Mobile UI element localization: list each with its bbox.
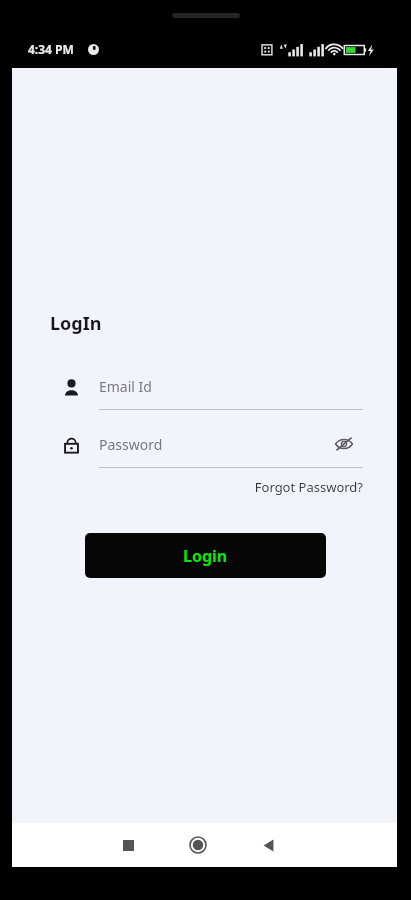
staticText: LogIn bbox=[50, 311, 102, 336]
button[interactable]: Forgot Password? bbox=[212, 474, 363, 500]
staticText: 4:34 PM bbox=[28, 41, 74, 57]
button[interactable]: Login bbox=[85, 533, 326, 578]
staticText: Forgot Password? bbox=[254, 478, 363, 496]
staticText: Password bbox=[99, 435, 163, 454]
staticText: Email Id bbox=[99, 377, 152, 396]
button[interactable]: Back bbox=[244, 823, 292, 867]
button[interactable]: Password bbox=[48, 426, 363, 468]
button[interactable]: Home bbox=[174, 823, 222, 867]
staticText: Login bbox=[183, 545, 228, 567]
button[interactable]: Show password bbox=[331, 431, 357, 457]
button[interactable]: Email Id bbox=[48, 368, 363, 410]
button[interactable]: Recent apps bbox=[104, 823, 152, 867]
